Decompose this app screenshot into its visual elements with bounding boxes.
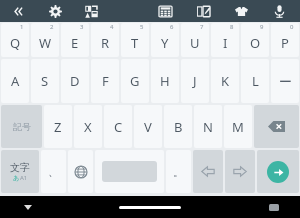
staticText: T xyxy=(131,34,139,52)
button[interactable]: ー xyxy=(271,59,299,103)
staticText: A xyxy=(11,72,20,90)
button[interactable]: Number pad xyxy=(155,1,175,21)
button[interactable]: 7 xyxy=(181,23,209,57)
staticText: N xyxy=(203,118,213,136)
button[interactable]: Enter xyxy=(257,150,299,193)
button[interactable]: Space xyxy=(95,150,164,193)
button[interactable]: Handwriting input xyxy=(193,1,213,21)
staticText: X xyxy=(84,118,92,136)
staticText: 文字 xyxy=(10,161,30,174)
button[interactable]: 1 xyxy=(1,23,29,57)
button[interactable]: Collapse toolbar xyxy=(9,1,29,21)
staticText: G xyxy=(130,72,140,90)
button[interactable]: D xyxy=(61,59,89,103)
button[interactable]: K xyxy=(211,59,239,103)
staticText: あ xyxy=(13,174,20,182)
button[interactable]: Settings xyxy=(45,1,65,21)
button[interactable]: 3 xyxy=(61,23,89,57)
staticText: 記号 xyxy=(13,121,31,132)
staticText: ー xyxy=(279,73,292,89)
staticText: Y xyxy=(161,34,169,52)
button[interactable]: 6 xyxy=(151,23,179,57)
button[interactable]: Backspace xyxy=(254,105,299,148)
button[interactable]: Voice input xyxy=(269,1,289,21)
button[interactable]: A xyxy=(1,59,29,103)
staticText: 0 xyxy=(290,23,294,31)
staticText: R xyxy=(101,34,110,52)
button[interactable]: Home xyxy=(119,206,181,209)
staticText: A1 xyxy=(20,174,28,182)
staticText: 5 xyxy=(140,23,144,31)
staticText: W xyxy=(39,34,52,52)
button[interactable]: G xyxy=(121,59,149,103)
button[interactable]: V xyxy=(134,105,162,148)
button[interactable]: Switch language xyxy=(68,150,93,193)
button[interactable]: J xyxy=(181,59,209,103)
button[interactable]: 。 xyxy=(166,150,191,193)
button[interactable]: Theme xyxy=(231,1,251,21)
staticText: J xyxy=(193,72,197,90)
button[interactable]: M xyxy=(224,105,252,148)
button[interactable]: S xyxy=(31,59,59,103)
staticText: D xyxy=(70,72,80,90)
button[interactable]: Change input mode xyxy=(1,150,39,193)
staticText: F xyxy=(102,72,109,90)
button[interactable]: Z xyxy=(44,105,72,148)
button[interactable]: Symbols xyxy=(1,105,42,148)
staticText: 2 xyxy=(50,23,54,31)
button[interactable]: Switch keyboard xyxy=(265,198,283,216)
staticText: O xyxy=(250,34,261,52)
button[interactable]: Hide keyboard xyxy=(19,198,37,216)
staticText: Z xyxy=(54,118,62,136)
staticText: L xyxy=(252,72,259,90)
button[interactable]: Move cursor right xyxy=(225,150,255,193)
staticText: 1 xyxy=(20,23,24,31)
staticText: 、 xyxy=(48,165,59,179)
staticText: C xyxy=(114,118,123,136)
staticText: 。 xyxy=(173,165,184,179)
button[interactable]: F xyxy=(91,59,119,103)
staticText: K xyxy=(221,72,230,90)
button[interactable]: B xyxy=(164,105,192,148)
button[interactable]: 8 xyxy=(211,23,239,57)
button[interactable]: X xyxy=(74,105,102,148)
staticText: S xyxy=(41,72,49,90)
button[interactable]: 、 xyxy=(41,150,66,193)
staticText: 3 xyxy=(80,23,84,31)
button[interactable]: Clipboard history xyxy=(81,1,101,21)
staticText: V xyxy=(144,118,152,136)
button[interactable]: L xyxy=(241,59,269,103)
button[interactable]: Move cursor left xyxy=(193,150,223,193)
staticText: P xyxy=(281,34,289,52)
button[interactable]: N xyxy=(194,105,222,148)
button[interactable]: 9 xyxy=(241,23,269,57)
staticText: 9 xyxy=(260,23,264,31)
staticText: 8 xyxy=(230,23,234,31)
button[interactable]: 5 xyxy=(121,23,149,57)
staticText: 7 xyxy=(200,23,204,31)
button[interactable]: H xyxy=(151,59,179,103)
staticText: U xyxy=(190,34,200,52)
staticText: M xyxy=(232,118,244,136)
button[interactable]: 0 xyxy=(271,23,299,57)
button[interactable]: 2 xyxy=(31,23,59,57)
button[interactable]: 4 xyxy=(91,23,119,57)
staticText: I xyxy=(223,34,228,52)
staticText: E xyxy=(71,34,79,52)
staticText: 6 xyxy=(170,23,174,31)
staticText: B xyxy=(174,118,183,136)
button[interactable]: C xyxy=(104,105,132,148)
staticText: Q xyxy=(10,34,21,52)
staticText: H xyxy=(160,72,170,90)
staticText: 4 xyxy=(110,23,114,31)
